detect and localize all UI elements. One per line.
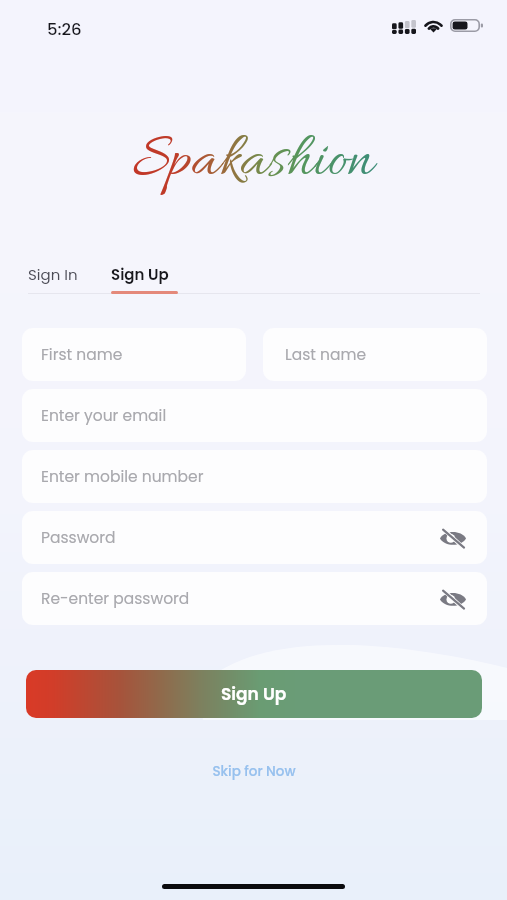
staticText: Spakashion [133, 124, 374, 200]
button[interactable]: Show password [439, 585, 467, 613]
button[interactable]: Re-enter password [22, 572, 487, 625]
staticText: Re-enter password [41, 588, 190, 610]
button[interactable]: Sign Up [111, 262, 169, 287]
staticText: Last name [285, 344, 367, 366]
staticText: First name [41, 344, 123, 366]
staticText: 5:26 [47, 18, 82, 41]
staticText: Sign Up [111, 264, 169, 285]
button[interactable]: Show password [439, 524, 467, 552]
button[interactable]: Password [22, 511, 487, 564]
staticText: Skip for Now [212, 762, 296, 781]
button[interactable]: Skip for Now [202, 759, 306, 784]
button[interactable]: Last name [263, 328, 487, 381]
button[interactable]: Sign In [28, 262, 78, 287]
button[interactable]: First name [22, 328, 246, 381]
staticText: Sign Up [221, 682, 287, 706]
staticText: Enter mobile number [41, 466, 204, 488]
staticText: Sign In [28, 264, 78, 285]
button[interactable]: Sign Up [26, 670, 482, 718]
staticText: Enter your email [41, 405, 167, 427]
staticText: Password [41, 527, 116, 549]
button[interactable]: Enter your email [22, 389, 487, 442]
button[interactable]: Enter mobile number [22, 450, 487, 503]
